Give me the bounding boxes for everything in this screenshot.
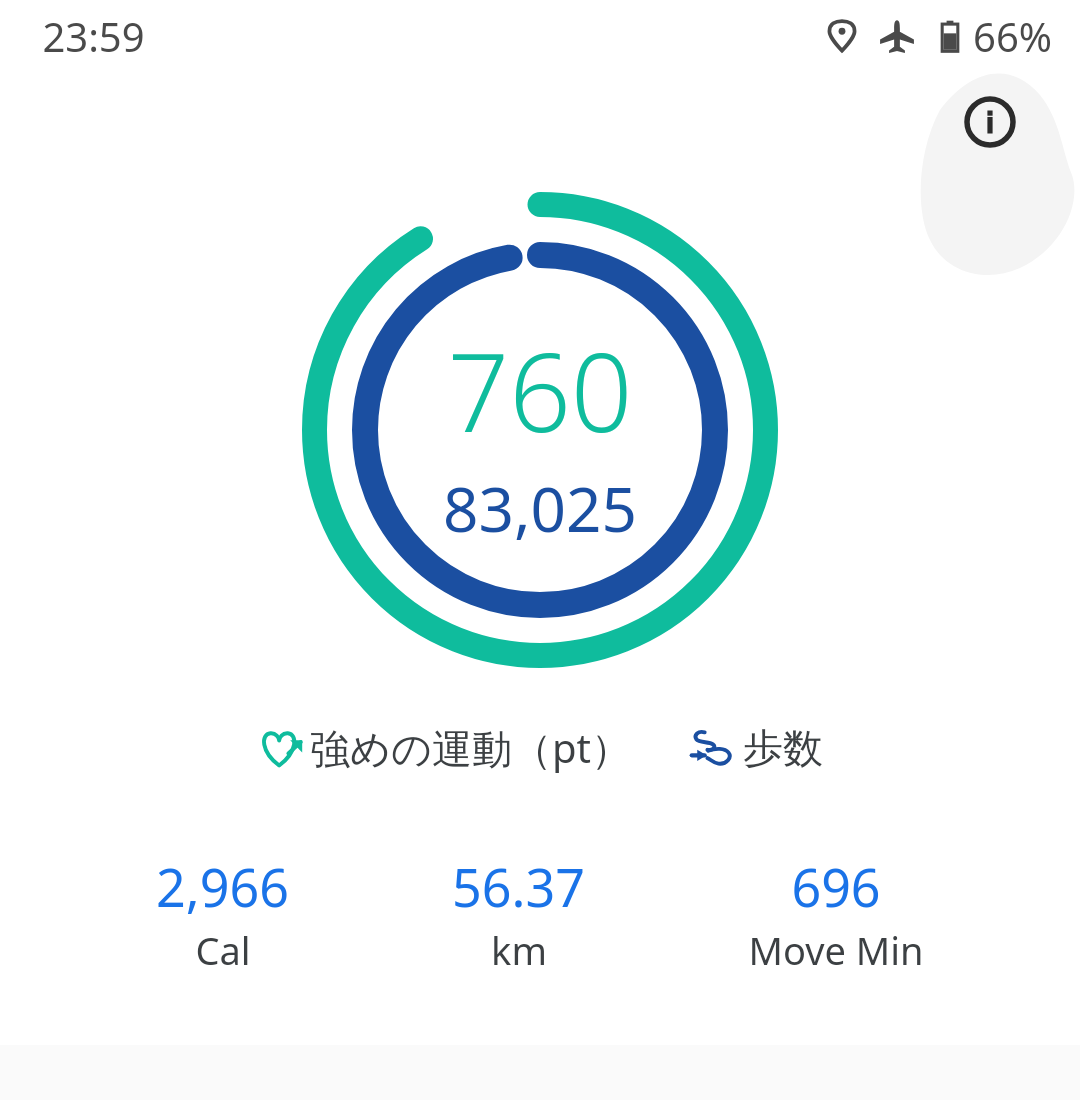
staticText: 23:59 xyxy=(42,9,145,63)
staticText: 56.37 xyxy=(452,851,585,922)
staticText: Cal xyxy=(195,924,251,976)
staticText: Move Min xyxy=(748,924,924,976)
button[interactable]: Information xyxy=(958,90,1022,154)
staticText: km xyxy=(491,924,547,976)
staticText: 696 xyxy=(791,851,881,922)
staticText: 歩数 xyxy=(743,723,823,773)
staticText: 760 xyxy=(447,317,633,464)
button[interactable]: 56.37 xyxy=(446,849,591,978)
button[interactable]: 2,966 xyxy=(150,849,295,978)
button[interactable]: 歩数 xyxy=(685,719,827,777)
staticText: 66% xyxy=(973,9,1052,63)
staticText: 強めの運動（pt） xyxy=(310,720,631,775)
staticText: 83,025 xyxy=(443,466,637,550)
button[interactable]: 強めの運動（pt） xyxy=(254,716,635,779)
button[interactable]: 696 xyxy=(742,849,930,978)
staticText: 2,966 xyxy=(156,851,289,922)
